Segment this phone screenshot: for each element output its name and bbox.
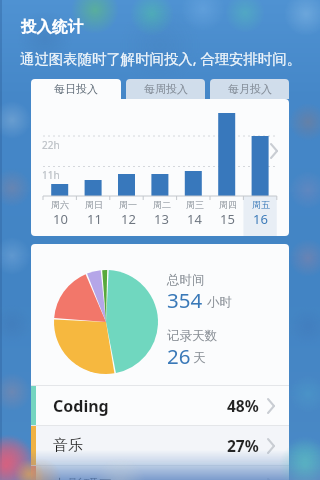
staticText: 小时 bbox=[207, 294, 232, 310]
staticText: 每月投入 bbox=[228, 82, 272, 96]
staticText: 通过图表随时了解时间投入, 合理安排时间。 bbox=[20, 49, 302, 69]
staticText: 电影研习 bbox=[53, 476, 113, 480]
staticText: 每日投入 bbox=[54, 82, 98, 96]
staticText: 13 bbox=[154, 210, 169, 228]
button[interactable]: 周五 bbox=[244, 199, 277, 228]
staticText: 周日 bbox=[85, 199, 103, 210]
button[interactable]: 周四 bbox=[211, 199, 244, 228]
staticText: 11 bbox=[87, 210, 102, 228]
button[interactable]: 每月投入 bbox=[210, 79, 289, 99]
staticText: 10 bbox=[53, 210, 68, 228]
button[interactable]: 每周投入 bbox=[126, 79, 205, 99]
button[interactable]: 22h bbox=[31, 99, 289, 236]
staticText: 记录天数 bbox=[167, 328, 217, 344]
button[interactable]: 音乐 bbox=[31, 426, 289, 465]
button[interactable]: 周六 bbox=[43, 199, 77, 228]
staticText: 周五 bbox=[252, 199, 270, 210]
staticText: 354 bbox=[167, 286, 203, 314]
staticText: 总时间 bbox=[167, 272, 205, 288]
staticText: 每周投入 bbox=[144, 82, 188, 96]
button[interactable]: 周二 bbox=[145, 199, 178, 228]
button[interactable]: Coding bbox=[31, 386, 289, 425]
staticText: 27% bbox=[227, 435, 259, 456]
staticText: 12 bbox=[121, 210, 136, 228]
staticText: 天 bbox=[193, 350, 206, 366]
staticText: 22h bbox=[42, 138, 60, 152]
staticText: 15 bbox=[220, 210, 235, 228]
button[interactable]: 周日 bbox=[77, 199, 111, 228]
button[interactable]: 周三 bbox=[178, 199, 211, 228]
staticText: 11h bbox=[42, 168, 60, 182]
button[interactable]: 每日投入 bbox=[31, 79, 121, 99]
button[interactable]: 周一 bbox=[111, 199, 145, 228]
staticText: Coding bbox=[53, 395, 109, 417]
staticText: 周一 bbox=[119, 199, 137, 210]
staticText: 14 bbox=[187, 210, 202, 228]
staticText: 周三 bbox=[186, 199, 204, 210]
staticText: 48% bbox=[227, 395, 259, 416]
staticText: 周六 bbox=[51, 199, 69, 210]
staticText: 16 bbox=[253, 210, 268, 228]
staticText: 周二 bbox=[153, 199, 171, 210]
staticText: 音乐 bbox=[53, 436, 83, 455]
button[interactable]: 电影研习 bbox=[31, 466, 289, 480]
staticText: 投入统计 bbox=[21, 17, 83, 37]
staticText: 17% bbox=[227, 475, 259, 480]
staticText: 周四 bbox=[219, 199, 237, 210]
staticText: 26 bbox=[167, 342, 191, 370]
